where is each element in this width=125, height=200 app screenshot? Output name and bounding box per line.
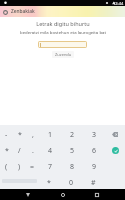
button[interactable]: 0	[60, 173, 82, 189]
staticText: 1	[48, 130, 53, 140]
button[interactable]: 3	[83, 125, 105, 141]
button[interactable]: *	[0, 141, 13, 157]
button[interactable]: .	[26, 141, 39, 157]
button[interactable]: back	[105, 125, 125, 141]
button[interactable]: 4	[39, 141, 61, 157]
button[interactable]: 7	[39, 157, 61, 173]
staticText: 3	[92, 130, 97, 140]
staticText: =	[30, 162, 35, 172]
button[interactable]: -	[0, 125, 13, 141]
button[interactable]: 6	[83, 141, 105, 157]
staticText: #	[91, 178, 96, 188]
button[interactable]: enter	[105, 141, 125, 157]
staticText: *	[47, 178, 51, 188]
staticText: Zuzendu	[55, 52, 72, 57]
button[interactable]: #	[82, 173, 104, 189]
staticText: 0	[69, 178, 74, 188]
staticText: *	[5, 146, 9, 156]
button[interactable]: Menu	[1, 8, 9, 16]
staticText: /	[18, 146, 21, 156]
staticText: bederatzi mila bostehun eta laurogeita b…	[20, 29, 106, 35]
button[interactable]	[38, 41, 87, 48]
staticText: 6	[92, 146, 97, 156]
staticText: 8	[70, 162, 75, 172]
staticText: *	[18, 130, 22, 140]
button[interactable]: Recents	[90, 189, 104, 200]
staticText: -	[5, 130, 8, 140]
button[interactable]: (	[0, 157, 13, 173]
button[interactable]: Zuzendu	[52, 51, 74, 58]
button[interactable]: Home	[56, 189, 70, 200]
button[interactable]: 9	[83, 157, 105, 173]
staticText: ,	[32, 130, 34, 140]
staticText: 4	[48, 146, 53, 156]
button[interactable]: 8	[61, 157, 83, 173]
button[interactable]: *	[38, 173, 60, 189]
staticText: .	[32, 146, 34, 156]
button[interactable]: 1	[39, 125, 61, 141]
button[interactable]: 2	[61, 125, 83, 141]
staticText: Zenbakiak	[11, 8, 35, 15]
staticText: 9	[92, 162, 97, 172]
staticText: Letrak digitu bihurtu	[36, 20, 90, 27]
button[interactable]: 5	[61, 141, 83, 157]
button[interactable]: =	[26, 157, 39, 173]
staticText: 2	[70, 130, 75, 140]
staticText: 5	[70, 146, 75, 156]
button[interactable]: Space	[0, 173, 38, 189]
button[interactable]: /	[13, 141, 26, 157]
staticText: (	[5, 162, 8, 172]
button[interactable]: *	[13, 125, 26, 141]
button[interactable]: )	[13, 157, 26, 173]
button[interactable]: ,	[26, 125, 39, 141]
staticText: 12:44	[113, 1, 124, 6]
staticText: 7	[48, 162, 53, 172]
staticText: )	[18, 162, 21, 172]
button[interactable]: Back	[21, 189, 35, 200]
